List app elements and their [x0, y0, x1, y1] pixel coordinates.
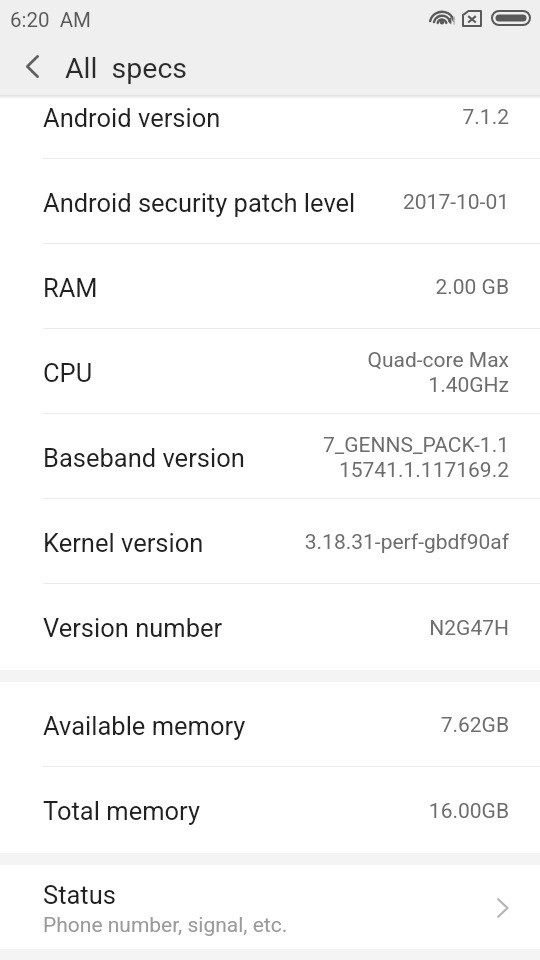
staticText: Quad-core Max 1.40GHz	[367, 348, 509, 398]
staticText: Status	[43, 880, 116, 910]
staticText: CPU	[43, 358, 93, 388]
button[interactable]: RAM	[0, 244, 540, 328]
staticText: Available memory	[43, 711, 246, 741]
staticText: Android security patch level	[43, 188, 356, 218]
staticText: Kernel version	[43, 528, 204, 558]
button[interactable]: CPU	[0, 329, 540, 413]
staticText: All specs	[65, 52, 188, 85]
staticText: 2.00 GB	[435, 275, 509, 300]
staticText: 7.62GB	[440, 713, 509, 738]
button[interactable]: Kernel version	[0, 499, 540, 583]
button[interactable]: Baseband version	[0, 414, 540, 498]
staticText: 3.18.31-perf-gbdf90af	[304, 530, 509, 555]
staticText: Total memory	[43, 796, 200, 826]
staticText: N2G47H	[429, 616, 509, 641]
staticText: Version number	[43, 613, 223, 643]
staticText: 6:20 AM	[10, 8, 91, 32]
button[interactable]: Status	[0, 865, 540, 949]
button[interactable]: Android version	[0, 95, 540, 158]
staticText: Android version	[43, 103, 221, 133]
staticText: 7.1.2	[462, 105, 509, 130]
staticText: 2017-10-01	[402, 190, 509, 215]
staticText: Phone number, signal, etc.	[43, 913, 288, 938]
staticText: 7_GENNS_PACK-1.1 15741.1.117169.2	[323, 433, 509, 483]
staticText: Baseband version	[43, 443, 245, 473]
button[interactable]: Version number	[0, 584, 540, 669]
staticText: 16.00GB	[428, 799, 509, 824]
button[interactable]: Back	[0, 38, 56, 94]
button[interactable]: Total memory	[0, 767, 540, 852]
button[interactable]: Android security patch level	[0, 159, 540, 243]
button[interactable]: Available memory	[0, 682, 540, 766]
staticText: RAM	[43, 273, 98, 303]
